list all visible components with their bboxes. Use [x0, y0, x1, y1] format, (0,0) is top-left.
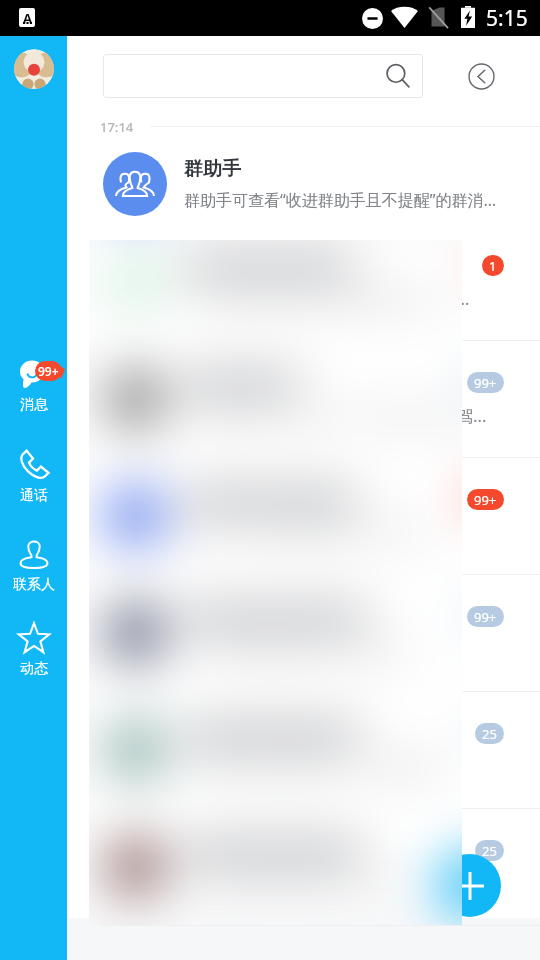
- staticText: 1: [489, 257, 497, 275]
- button[interactable]: 周末一起出去玩吧我们约个时间…: [67, 458, 540, 575]
- button[interactable]: 大家注意安全出行路上一定要小心点驾…: [67, 341, 540, 458]
- button[interactable]: 今天的活动安排已经更新请查收一下…: [67, 224, 540, 341]
- button[interactable]: 这个方案我觉得还可以再优化…: [67, 575, 540, 692]
- staticText: 周末一起出去玩吧我们约个时间…: [184, 521, 436, 544]
- staticText: 今天的活动安排已经更新请查收一下…: [184, 287, 470, 310]
- button[interactable]: New chat: [438, 854, 501, 917]
- button[interactable]: Search: [103, 54, 423, 98]
- button[interactable]: Back: [465, 60, 497, 92]
- staticText: 99+: [474, 491, 497, 509]
- staticText: 动态: [20, 660, 48, 678]
- button[interactable]: 今天的活动安排已经更新请查收一下…: [67, 224, 540, 341]
- button[interactable]: 晚上回家吃饭吗我做了好吃的…: [67, 809, 540, 926]
- button[interactable]: 会议纪要已经整理好了请大家看更…: [67, 692, 540, 809]
- staticText: 99+: [474, 491, 497, 509]
- staticText: 99+: [474, 374, 497, 392]
- button[interactable]: Search: [103, 54, 423, 98]
- staticText: 晚上回家吃饭吗我做了好吃的…: [184, 872, 419, 895]
- staticText: 99+: [474, 608, 497, 626]
- staticText: 会议纪要已经整理好了请大家看更…: [184, 755, 453, 778]
- staticText: 群助手可查看“收进群助手且不提醒”的群消…: [184, 189, 497, 211]
- staticText: 25: [482, 725, 497, 743]
- button[interactable]: 大家注意安全出行路上一定要小心点驾…: [67, 341, 540, 458]
- button[interactable]: Back: [465, 60, 497, 92]
- button[interactable]: 这个方案我觉得还可以再优化…: [67, 575, 540, 692]
- staticText: 这个方案我觉得还可以再优化…: [184, 638, 419, 661]
- staticText: 17:14: [100, 118, 134, 134]
- staticText: A: [23, 9, 32, 27]
- staticText: 周末一起出去玩吧我们约个时间…: [184, 521, 436, 544]
- button[interactable]: 晚上回家吃饭吗我做了好吃的…: [67, 809, 540, 926]
- staticText: 联系人: [13, 576, 55, 594]
- staticText: 晚上回家吃饭吗我做了好吃的…: [184, 872, 419, 895]
- button[interactable]: 会议纪要已经整理好了请大家看更…: [67, 692, 540, 809]
- staticText: 大家注意安全出行路上一定要小心点驾…: [184, 404, 487, 427]
- button[interactable]: 99+: [0, 356, 67, 414]
- button[interactable]: New chat: [438, 854, 501, 917]
- staticText: 群助手可查看“收进群助手且不提醒”的群消…: [184, 189, 497, 211]
- button[interactable]: 群助手: [103, 143, 522, 224]
- staticText: 会议纪要已经整理好了请大家看更…: [184, 755, 453, 778]
- staticText: 消息: [20, 396, 48, 414]
- staticText: 今天的活动安排已经更新请查收一下…: [184, 287, 470, 310]
- button[interactable]: Profile: [14, 49, 54, 89]
- staticText: 5:15: [486, 4, 528, 33]
- staticText: 17:14: [100, 118, 134, 134]
- staticText: 通话: [20, 487, 48, 505]
- button[interactable]: 通话: [0, 447, 67, 505]
- staticText: 99+: [474, 374, 497, 392]
- staticText: 群助手: [184, 157, 241, 181]
- button[interactable]: 周末一起出去玩吧我们约个时间…: [67, 458, 540, 575]
- button[interactable]: 群助手: [103, 143, 522, 224]
- staticText: 99+: [38, 363, 59, 379]
- staticText: 群助手: [184, 157, 241, 181]
- button[interactable]: 联系人: [0, 536, 67, 594]
- staticText: 1: [489, 257, 497, 275]
- staticText: 25: [482, 725, 497, 743]
- staticText: 25: [482, 842, 497, 860]
- staticText: 这个方案我觉得还可以再优化…: [184, 638, 419, 661]
- staticText: 大家注意安全出行路上一定要小心点驾…: [184, 404, 487, 427]
- staticText: 25: [482, 842, 497, 860]
- button[interactable]: 动态: [0, 620, 67, 678]
- staticText: 99+: [474, 608, 497, 626]
